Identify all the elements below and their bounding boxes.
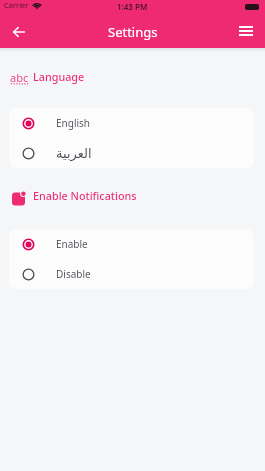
staticText: Enable Notifications [33, 188, 137, 203]
button[interactable]: Menu [233, 15, 259, 47]
staticText: Settings [108, 23, 158, 41]
button[interactable]: Back [6, 16, 32, 48]
staticText: 1:43 PM [117, 1, 148, 12]
button[interactable]: Disable [9, 259, 254, 289]
button[interactable]: English [9, 108, 254, 138]
staticText: العربية [56, 146, 92, 161]
staticText: Disable [56, 267, 91, 281]
staticText: Enable [56, 237, 88, 251]
button[interactable]: Enable [9, 229, 254, 259]
staticText: Language [33, 69, 85, 84]
staticText: abc [10, 70, 29, 85]
staticText: Carrier [4, 0, 29, 10]
button[interactable]: العربية [9, 138, 254, 168]
staticText: English [56, 116, 91, 130]
